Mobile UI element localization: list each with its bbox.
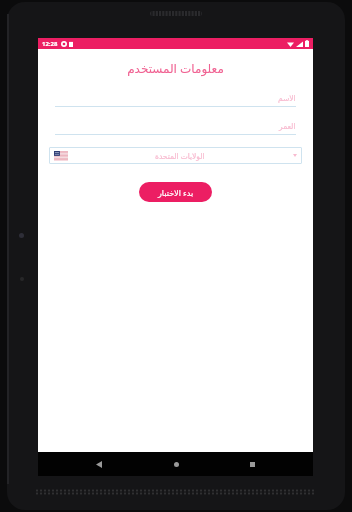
button[interactable]: Home: [161, 452, 191, 476]
button[interactable]: العمر: [55, 120, 296, 135]
button[interactable]: Back: [84, 452, 114, 476]
button[interactable]: بدء الاختبار: [139, 182, 212, 202]
other: United States flag: [54, 151, 68, 160]
other: Open country list: [293, 154, 297, 157]
staticText: معلومات المستخدم: [38, 60, 313, 76]
staticText: الاسم: [278, 94, 296, 103]
staticText: 12:28: [42, 40, 58, 48]
staticText: العمر: [279, 122, 296, 131]
staticText: الولايات المتحدة: [155, 151, 205, 161]
button[interactable]: Recent apps: [237, 452, 267, 476]
staticText: بدء الاختبار: [158, 187, 194, 198]
button[interactable]: United States flag: [49, 147, 302, 164]
button[interactable]: الاسم: [55, 92, 296, 107]
